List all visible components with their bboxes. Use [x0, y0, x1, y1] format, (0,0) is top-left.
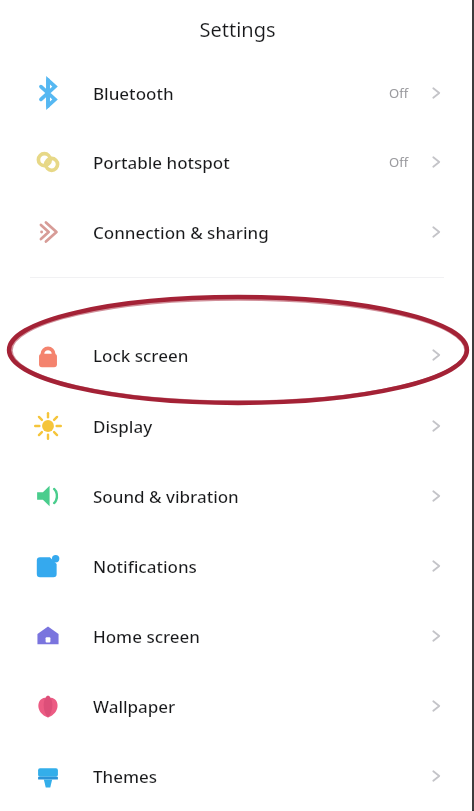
other: Wallpaper: [32, 690, 64, 722]
staticText: Off: [389, 153, 409, 171]
staticText: Notifications: [93, 555, 197, 578]
button[interactable]: Wallpaper: [0, 671, 474, 741]
staticText: Themes: [93, 765, 158, 788]
button[interactable]: Themes: [0, 741, 474, 811]
button[interactable]: Bluetooth: [0, 58, 474, 128]
other: Home screen: [32, 620, 64, 652]
button[interactable]: Display: [0, 391, 474, 461]
other: Lock screen: [32, 339, 64, 371]
other: Connection & sharing: [32, 216, 64, 248]
button[interactable]: Sound & vibration: [0, 461, 474, 531]
staticText: Home screen: [93, 625, 201, 648]
button[interactable]: Connection & sharing: [0, 197, 474, 267]
other: Sound & vibration: [32, 480, 64, 512]
other: Bluetooth: [32, 77, 64, 109]
other: Themes: [32, 760, 64, 792]
staticText: Connection & sharing: [93, 221, 269, 244]
staticText: Wallpaper: [93, 695, 176, 718]
staticText: Display: [93, 415, 153, 438]
staticText: Portable hotspot: [93, 151, 230, 174]
other: Portable hotspot: [32, 146, 64, 178]
other: Notifications: [32, 550, 64, 582]
staticText: Bluetooth: [93, 82, 174, 105]
other: Display: [32, 410, 64, 442]
staticText: Sound & vibration: [93, 485, 239, 508]
staticText: Lock screen: [93, 344, 189, 367]
staticText: Settings: [199, 16, 276, 43]
button[interactable]: Portable hotspot: [0, 127, 474, 197]
button[interactable]: Lock screen: [0, 320, 474, 390]
button[interactable]: Home screen: [0, 601, 474, 671]
staticText: Off: [389, 84, 409, 102]
button[interactable]: Notifications: [0, 531, 474, 601]
